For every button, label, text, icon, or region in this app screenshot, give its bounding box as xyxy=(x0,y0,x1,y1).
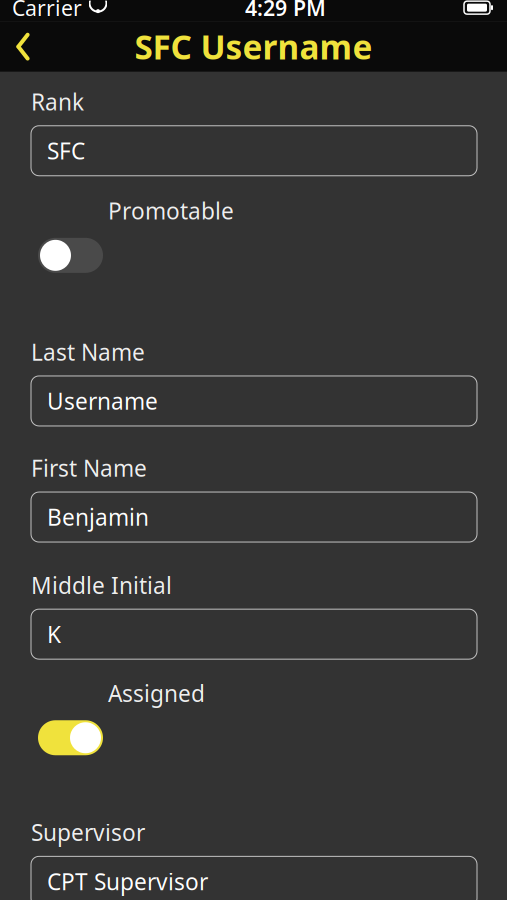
staticText: Assigned xyxy=(108,678,205,708)
button[interactable]: Username xyxy=(31,376,477,426)
button[interactable]: CPT Supervisor xyxy=(31,856,477,900)
staticText: Promotable xyxy=(108,196,234,226)
button[interactable]: K xyxy=(31,609,477,659)
staticText: 4:29 PM xyxy=(245,0,326,22)
staticText: Supervisor xyxy=(31,817,145,847)
staticText: K xyxy=(47,619,61,649)
button[interactable]: SFC xyxy=(31,126,477,176)
staticText: First Name xyxy=(31,453,147,483)
staticText: Carrier xyxy=(12,0,82,22)
button[interactable]: Benjamin xyxy=(31,492,477,542)
staticText: SFC xyxy=(47,136,85,166)
button[interactable]: Assigned xyxy=(31,708,103,755)
staticText: Last Name xyxy=(31,337,145,367)
staticText: CPT Supervisor xyxy=(47,866,208,896)
staticText: Rank xyxy=(31,87,84,117)
staticText: Middle Initial xyxy=(31,570,172,600)
button[interactable]: Back xyxy=(0,22,46,72)
staticText: Username xyxy=(47,386,158,416)
staticText: Benjamin xyxy=(47,502,149,532)
button[interactable]: Promotable xyxy=(31,226,103,273)
staticText: SFC Username xyxy=(134,24,372,69)
